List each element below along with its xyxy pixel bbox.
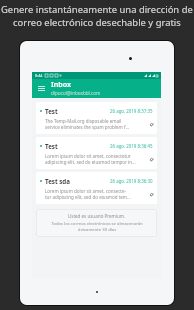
staticText: correo electrónico desechable y gratis xyxy=(13,16,181,29)
staticText: Inbox xyxy=(51,79,72,89)
staticText: 26 ago. 2019 8:36:45 xyxy=(110,143,153,149)
staticText: Lorem ipsum dolor sit amet, consecte- tu… xyxy=(45,188,148,200)
staticText: 0:44 xyxy=(35,73,43,78)
staticText: 26 ago. 2019 8:37:35 xyxy=(110,108,153,114)
staticText: Lorem ipsum dolor sit amet, consectetur … xyxy=(45,153,148,165)
staticText: dipucol@inboxbbl.com xyxy=(51,90,101,96)
button[interactable]: Test xyxy=(36,137,157,169)
button[interactable]: Open navigation menu xyxy=(32,79,51,98)
staticText: Todos los correos electrónicos se almace… xyxy=(51,221,143,233)
staticText: The Temp-Mail.org disposable email servi… xyxy=(45,118,148,130)
button[interactable]: Test sda xyxy=(36,172,157,204)
staticText: Test xyxy=(45,142,58,150)
staticText: Test sda xyxy=(45,177,70,185)
staticText: Usted es usuario Premium. xyxy=(68,213,126,219)
staticText: Genere instantáneamente una dirección de xyxy=(1,3,193,16)
staticText: 26 ago. 2019 8:36:30 xyxy=(110,178,153,184)
button[interactable]: Test xyxy=(36,102,157,134)
staticText: Test xyxy=(45,107,58,115)
